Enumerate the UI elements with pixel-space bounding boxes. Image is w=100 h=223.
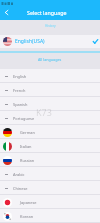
staticText: Select language (27, 9, 67, 16)
button[interactable]: Russian (0, 153, 100, 167)
staticText: English(USA) (15, 38, 45, 45)
staticText: English (13, 74, 27, 79)
button[interactable]: German (0, 125, 100, 139)
button[interactable]: Spanish (0, 97, 100, 111)
button[interactable]: English (0, 69, 100, 83)
staticText: History (45, 24, 56, 28)
staticText: K73 (36, 106, 52, 118)
button[interactable]: English(USA) (0, 35, 100, 48)
button[interactable]: Portuguese (0, 111, 100, 125)
button[interactable]: Korean (0, 209, 100, 223)
button[interactable]: Italian (0, 139, 100, 153)
staticText: Spanish (13, 102, 28, 107)
button[interactable]: Back (0, 6, 13, 19)
staticText: Korean (20, 214, 34, 219)
staticText: Japanese (20, 200, 37, 205)
staticText: All languages (38, 57, 62, 62)
staticText: French (13, 88, 26, 93)
staticText: Chinese (13, 186, 28, 191)
staticText: Arabic (13, 172, 25, 177)
button[interactable]: French (0, 83, 100, 97)
button[interactable]: Chinese (0, 181, 100, 195)
staticText: German (20, 130, 35, 135)
staticText: Italian (20, 144, 32, 149)
button[interactable]: Japanese (0, 195, 100, 209)
staticText: Portuguese (13, 116, 35, 121)
button[interactable]: Arabic (0, 167, 100, 181)
staticText: Russian (20, 158, 35, 163)
